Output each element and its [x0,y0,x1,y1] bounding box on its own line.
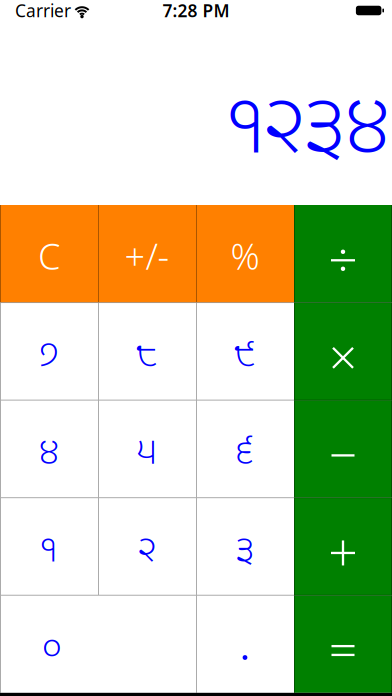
button[interactable]: C [0,205,98,303]
button[interactable]: +/- [98,205,196,303]
staticText: ੨ [137,516,156,583]
button[interactable]: Decimal point [196,595,294,693]
button[interactable]: % [196,205,294,303]
staticText: C [38,232,60,280]
button[interactable]: ੬ [196,400,294,498]
staticText: ੪ [38,419,60,485]
staticText: ੧੨੩੪ [226,51,392,200]
staticText: ੯ [234,321,256,388]
staticText: ੧ [40,516,58,583]
button[interactable]: ੪ [0,400,98,498]
button[interactable]: Multiply [294,303,392,400]
staticText: +/- [124,232,169,280]
staticText: ੬ [235,419,255,485]
button[interactable]: Divide [294,205,392,303]
staticText: ੫ [136,419,158,485]
button[interactable]: ੫ [98,400,196,498]
staticText: ੩ [235,516,255,583]
staticText: Carrier [15,0,71,22]
button[interactable]: ੨ [98,498,196,595]
staticText: % [230,232,259,280]
staticText: 7:28 PM [162,0,229,22]
staticText: ੦ [42,614,62,680]
staticText: ੮ [136,321,158,388]
button[interactable]: Subtract [294,400,392,498]
button[interactable]: ੯ [196,303,294,400]
button[interactable]: Equals [294,595,392,693]
button[interactable]: ੦ [0,595,196,693]
button[interactable]: ੮ [98,303,196,400]
button[interactable]: Add [294,498,392,595]
button[interactable]: ੩ [196,498,294,595]
button[interactable]: ੧ [0,498,98,595]
button[interactable]: ੭ [0,303,98,400]
staticText: ੭ [38,321,59,388]
